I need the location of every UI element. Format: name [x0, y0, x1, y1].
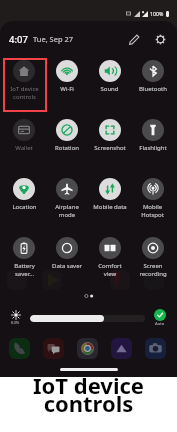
- button[interactable]: Sound: [88, 57, 131, 93]
- staticText: Comfort view: [98, 262, 122, 277]
- button[interactable]: cam: [145, 338, 166, 359]
- button[interactable]: Location: [3, 175, 45, 211]
- button[interactable]: Screen recording: [131, 234, 174, 277]
- button[interactable]: Battery saver...: [3, 234, 45, 277]
- staticText: Screenshot: [94, 144, 126, 152]
- button[interactable]: Settings: [150, 29, 170, 49]
- button[interactable]: Auto: [149, 309, 171, 327]
- staticText: Flashlight: [139, 144, 167, 152]
- button[interactable]: IoT device controls: [3, 57, 45, 100]
- staticText: 4:07: [9, 33, 28, 46]
- staticText: Battery saver...: [14, 262, 35, 277]
- staticText: Location: [12, 203, 37, 211]
- button[interactable]: Bluetooth: [131, 57, 174, 93]
- button[interactable]: Flashlight: [131, 116, 174, 152]
- staticText: IoT device controls: [10, 85, 39, 100]
- staticText: IoT device controls: [33, 370, 144, 418]
- button[interactable]: chrome: [77, 338, 98, 359]
- button[interactable]: Wi-Fi: [45, 57, 88, 93]
- button[interactable]: Mobile Hotspot: [131, 175, 174, 218]
- button[interactable]: Screenshot: [88, 116, 131, 152]
- button[interactable]: phone: [9, 338, 30, 359]
- button[interactable]: Wallet: [3, 116, 45, 152]
- staticText: Sound: [100, 85, 119, 93]
- staticText: Wallet: [15, 144, 33, 152]
- button[interactable]: Airplane mode: [45, 175, 88, 218]
- staticText: Mobile data: [93, 203, 127, 211]
- button[interactable]: play: [111, 338, 132, 359]
- staticText: Bluetooth: [139, 85, 167, 93]
- button[interactable]: msg: [43, 338, 64, 359]
- staticText: 63%: [11, 320, 20, 326]
- staticText: Rotation: [55, 144, 79, 152]
- staticText: Airplane mode: [55, 203, 79, 218]
- staticText: Tue, Sep 27: [33, 34, 74, 44]
- staticText: Wi-Fi: [60, 85, 74, 93]
- button[interactable]: Edit: [124, 29, 144, 49]
- staticText: Screen recording: [139, 262, 167, 277]
- staticText: 100%: [150, 10, 164, 17]
- button[interactable]: Mobile data: [88, 175, 131, 211]
- button[interactable]: Rotation: [45, 116, 88, 152]
- staticText: Data saver: [52, 262, 82, 270]
- staticText: Mobile Hotspot: [141, 203, 164, 218]
- button[interactable]: Brightness: [30, 315, 145, 322]
- button[interactable]: Comfort view: [88, 234, 131, 277]
- button[interactable]: Data saver: [45, 234, 88, 270]
- staticText: Auto: [155, 321, 165, 327]
